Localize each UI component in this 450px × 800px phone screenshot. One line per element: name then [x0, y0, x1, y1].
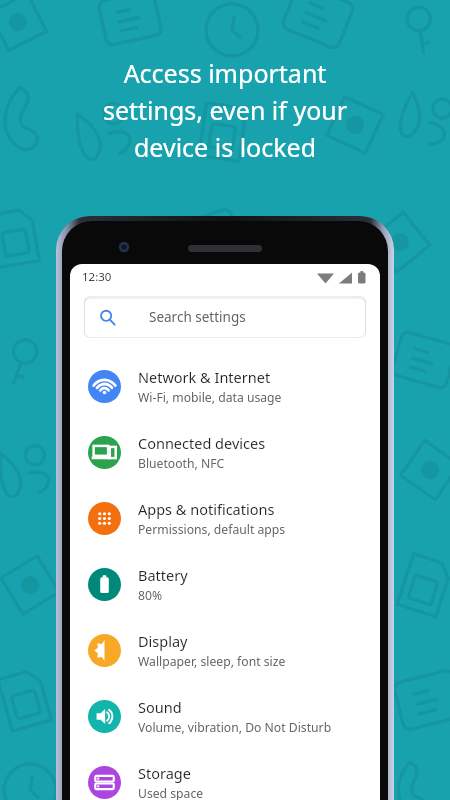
staticText: 12:30 — [82, 269, 112, 285]
button[interactable]: Display — [70, 617, 380, 683]
button[interactable]: Apps & notifications — [70, 485, 380, 551]
button[interactable]: Search — [84, 296, 366, 338]
button[interactable]: Connected devices — [70, 419, 380, 485]
other: Search — [99, 309, 116, 326]
staticText: Permissions, default apps — [138, 521, 286, 538]
button[interactable]: Network & Internet — [70, 353, 380, 419]
staticText: Battery — [138, 565, 188, 585]
button[interactable]: Battery — [70, 551, 380, 617]
staticText: Apps & notifications — [138, 499, 275, 519]
staticText: Search settings — [149, 308, 246, 326]
staticText: Storage — [138, 763, 191, 783]
staticText: Used space — [138, 785, 204, 800]
staticText: Wi-Fi, mobile, data usage — [138, 389, 282, 406]
staticText: Display — [138, 631, 188, 651]
staticText: Volume, vibration, Do Not Disturb — [138, 719, 332, 736]
staticText: Network & Internet — [138, 367, 271, 387]
staticText: Access important settings, even if your … — [36, 56, 414, 164]
button[interactable]: Sound — [70, 683, 380, 749]
staticText: Bluetooth, NFC — [138, 455, 225, 472]
staticText: 80% — [138, 587, 163, 604]
staticText: Connected devices — [138, 433, 266, 453]
staticText: Sound — [138, 697, 182, 717]
staticText: Wallpaper, sleep, font size — [138, 653, 286, 670]
button[interactable]: Storage — [70, 749, 380, 800]
